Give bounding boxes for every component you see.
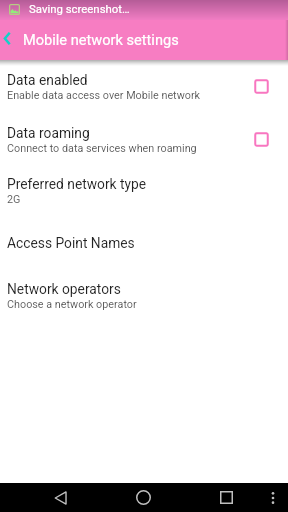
staticText: Preferred network type bbox=[7, 176, 147, 192]
button[interactable]: Data enabled checkbox bbox=[248, 73, 274, 99]
other: Screenshot bbox=[9, 4, 20, 15]
button[interactable]: Data enabled bbox=[0, 63, 288, 115]
staticText: Data roaming bbox=[7, 125, 90, 141]
button[interactable]: Navigate up bbox=[0, 20, 18, 60]
staticText: Data enabled bbox=[7, 72, 88, 88]
button[interactable]: Preferred network type bbox=[0, 167, 288, 219]
button[interactable]: Data roaming checkbox bbox=[248, 126, 274, 152]
staticText: Choose a network operator bbox=[7, 298, 137, 311]
staticText: Connect to data services when roaming bbox=[7, 142, 197, 155]
staticText: 2G bbox=[7, 193, 21, 206]
staticText: Network operators bbox=[7, 281, 121, 297]
staticText: Access Point Names bbox=[7, 235, 135, 251]
staticText: Enable data access over Mobile network bbox=[7, 89, 201, 102]
button[interactable]: Back bbox=[39, 483, 81, 512]
staticText: Mobile network settings bbox=[23, 31, 179, 48]
button[interactable]: More options bbox=[258, 483, 288, 512]
button[interactable]: Network operators bbox=[0, 272, 288, 324]
button[interactable]: Data roaming bbox=[0, 116, 288, 168]
button[interactable]: Recent apps bbox=[205, 483, 247, 512]
button[interactable]: Home bbox=[122, 483, 164, 512]
button[interactable]: Access Point Names bbox=[0, 226, 288, 272]
staticText: Saving screenshot… bbox=[29, 2, 130, 15]
